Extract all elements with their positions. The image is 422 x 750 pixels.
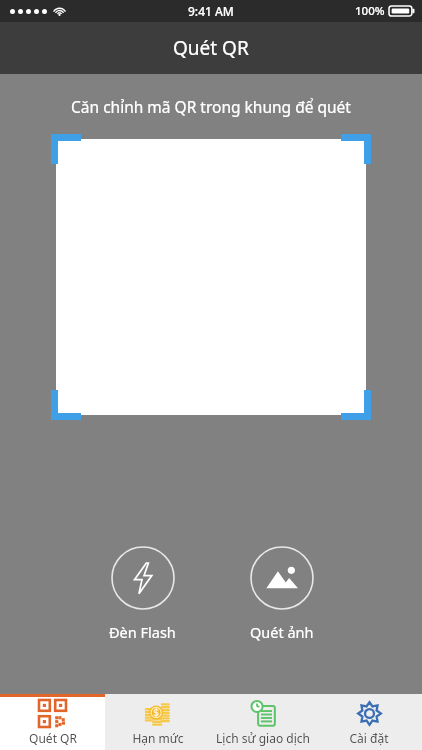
button[interactable]: Đèn Flash [105,542,180,646]
staticText: Quét ảnh [250,622,314,642]
button[interactable]: Quét QR [0,694,105,750]
button[interactable]: Lịch sử giao dịch [210,694,316,750]
button[interactable]: Cài đặt [316,694,422,750]
button[interactable]: Quét ảnh [246,542,318,646]
button[interactable]: Hạn mức [105,694,210,750]
staticText: Hạn mức [132,730,184,746]
staticText: Cài đặt [349,730,389,746]
staticText: Quét QR [29,730,77,746]
staticText: Đèn Flash [109,622,176,642]
staticText: Căn chỉnh mã QR trong khung để quét [71,96,351,117]
staticText: 100% [355,3,385,19]
staticText: 9:41 AM [188,3,234,19]
staticText: Quét QR [173,35,249,61]
staticText: Lịch sử giao dịch [216,730,310,746]
